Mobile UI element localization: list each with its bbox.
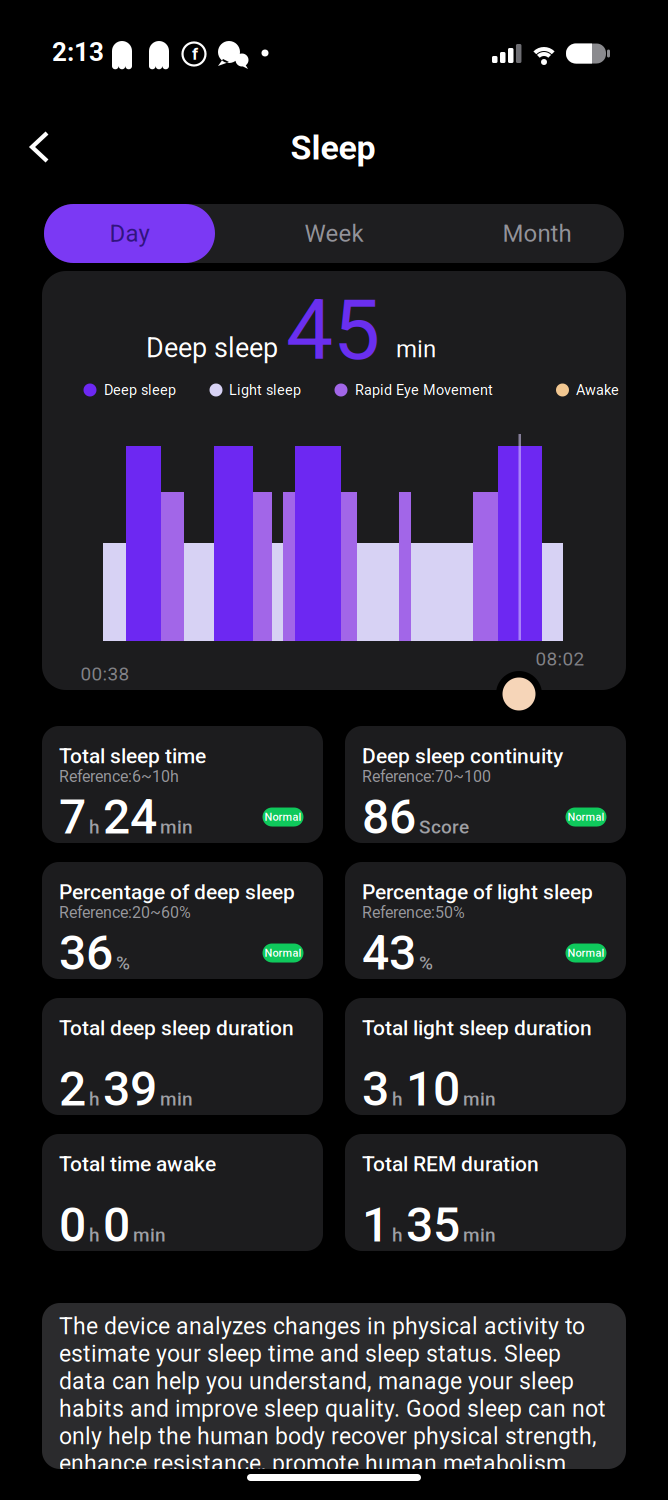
staticText: 86 xyxy=(362,789,416,845)
staticText: Deep sleep xyxy=(104,382,176,398)
staticText: min xyxy=(160,816,193,838)
staticText: Sleep xyxy=(290,128,375,168)
staticText: min xyxy=(396,335,436,363)
staticText: Deep sleep xyxy=(146,332,278,364)
staticText: Week xyxy=(304,219,363,247)
staticText: f xyxy=(192,44,198,64)
staticText: Reference:6~10h xyxy=(59,767,179,786)
staticText: 00:38 xyxy=(80,663,129,685)
staticText: Reference:50% xyxy=(362,903,465,922)
button[interactable] xyxy=(502,677,535,710)
staticText: Total sleep time xyxy=(59,744,206,768)
button[interactable] xyxy=(17,125,61,169)
button[interactable]: Week xyxy=(244,204,424,263)
staticText: h xyxy=(89,1224,100,1246)
staticText: 3 xyxy=(362,1061,389,1117)
staticText: 10 xyxy=(406,1061,460,1117)
staticText: 35 xyxy=(406,1197,460,1253)
staticText: 08:02 xyxy=(535,648,584,670)
staticText: Normal xyxy=(567,811,604,823)
staticText: Percentage of deep sleep xyxy=(59,880,295,904)
staticText: Day xyxy=(109,219,149,247)
staticText: h xyxy=(392,1224,403,1246)
staticText: Total deep sleep duration xyxy=(59,1016,294,1040)
staticText: min xyxy=(160,1088,193,1110)
button[interactable]: Day xyxy=(44,204,215,263)
staticText: 43 xyxy=(362,925,416,981)
staticText: Total time awake xyxy=(59,1152,216,1176)
staticText: % xyxy=(116,952,130,974)
staticText: Rapid Eye Movement xyxy=(355,382,493,398)
staticText: h xyxy=(89,1088,100,1110)
staticText: h xyxy=(392,1088,403,1110)
staticText: 24 xyxy=(103,789,157,845)
staticText: Score xyxy=(419,816,469,838)
staticText: Deep sleep continuity xyxy=(362,744,563,768)
staticText: Reference:70~100 xyxy=(362,767,491,786)
staticText: 36 xyxy=(59,925,113,981)
staticText: 2:13 xyxy=(52,37,104,67)
staticText: 7 xyxy=(59,789,86,845)
staticText: min xyxy=(463,1088,496,1110)
button[interactable]: Month xyxy=(447,204,627,263)
staticText: 0 xyxy=(103,1197,130,1253)
staticText: Percentage of light sleep xyxy=(362,880,593,904)
staticText: 0 xyxy=(59,1197,86,1253)
staticText: Normal xyxy=(264,947,301,959)
staticText: % xyxy=(419,952,433,974)
staticText: Normal xyxy=(567,947,604,959)
staticText: Reference:20~60% xyxy=(59,903,191,922)
staticText: 39 xyxy=(103,1061,157,1117)
staticText: h xyxy=(89,816,100,838)
staticText: The device analyzes changes in physical … xyxy=(59,1313,606,1477)
staticText: Total light sleep duration xyxy=(362,1016,592,1040)
staticText: 1 xyxy=(362,1197,389,1253)
staticText: 45 xyxy=(286,281,380,379)
staticText: Awake xyxy=(576,382,619,398)
staticText: min xyxy=(133,1224,166,1246)
staticText: 2 xyxy=(59,1061,86,1117)
staticText: Normal xyxy=(264,811,301,823)
staticText: Light sleep xyxy=(229,382,301,398)
staticText: Total REM duration xyxy=(362,1152,539,1176)
staticText: Month xyxy=(502,219,571,247)
staticText: min xyxy=(463,1224,496,1246)
